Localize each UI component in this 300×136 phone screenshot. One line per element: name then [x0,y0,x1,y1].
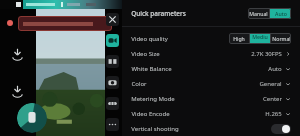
staticText: Video Size [131,50,160,58]
staticText: 2.7K 30FPS [251,50,282,58]
staticText: Manual [249,10,268,17]
button[interactable]: Exit full screen [106,13,119,26]
button[interactable]: Medium [250,33,270,44]
button[interactable]: Color [122,76,300,91]
button[interactable]: High [229,33,249,44]
staticText: Video Encode [131,110,170,118]
button[interactable]: White Balance [122,61,300,76]
staticText: Normal [272,35,291,42]
staticText: Auto [268,65,282,73]
staticText: General [259,80,282,88]
staticText: Vertical shooting [131,125,179,133]
button[interactable]: Gallery [17,103,47,133]
button[interactable]: Metering Mode [122,91,300,106]
staticText: Medium [250,33,270,44]
staticText: High [233,35,245,42]
staticText: White Balance [131,65,172,73]
button[interactable]: Timelapse mode [106,97,119,110]
button[interactable]: Download all files [7,81,27,101]
button[interactable]: Grid mode [106,55,119,68]
button[interactable]: More modes [106,118,119,131]
staticText: Center [263,95,282,103]
button[interactable]: Vertical shooting toggle [271,124,291,134]
button[interactable]: Normal [271,33,291,44]
button[interactable]: Video Size [122,46,300,61]
staticText: Metering Mode [131,95,175,103]
button[interactable]: Recording warning [7,15,112,31]
button[interactable]: Video quality [122,31,300,46]
button[interactable]: Video mode [106,34,119,47]
button[interactable]: Download to phone [7,44,27,64]
staticText: Quick parameters [131,9,186,18]
button[interactable]: Auto [270,8,291,19]
button[interactable]: Photo mode [106,76,119,89]
staticText: Video quality [131,35,168,43]
staticText: H.265 [265,110,282,118]
staticText: Color [131,80,147,88]
button[interactable]: Manual [248,8,269,19]
staticText: Auto [275,10,287,17]
button[interactable]: Vertical shooting [122,121,300,136]
button[interactable]: Video Encode [122,106,300,121]
